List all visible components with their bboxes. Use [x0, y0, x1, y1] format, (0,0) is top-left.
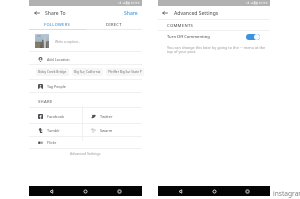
button[interactable]: Back [178, 189, 183, 194]
button[interactable]: Facebook [29, 110, 81, 122]
staticText: You can change this later by going to th… [167, 45, 266, 54]
button[interactable]: Tumblr [29, 124, 81, 136]
staticText: Tumblr [47, 128, 60, 133]
button[interactable]: Pfeiffer Big Sur State P [106, 68, 144, 76]
staticText: Turn Off Commenting [167, 34, 210, 40]
button[interactable]: Recents [245, 189, 250, 194]
button[interactable]: Add Location [29, 53, 142, 65]
staticText: Swarm [100, 128, 113, 133]
staticText: Share To [45, 10, 66, 17]
staticText: Add Location [47, 57, 70, 62]
button[interactable]: Tag People [29, 80, 142, 92]
button[interactable]: Advanced Settings [29, 150, 142, 157]
button[interactable]: Share [123, 8, 139, 19]
staticText: Big Sur, California [74, 70, 101, 74]
staticText: Flickr [47, 140, 57, 145]
button[interactable]: Bixby Creek Bridge [36, 68, 69, 76]
button[interactable]: Turn Off Commenting [158, 31, 270, 43]
button[interactable]: FOLLOWERS [29, 20, 85, 29]
staticText: Pfeiffer Big Sur State P [108, 70, 142, 74]
staticText: Write a caption... [55, 40, 81, 44]
button[interactable]: Big Sur, California [72, 68, 103, 76]
staticText: Facebook [47, 114, 65, 119]
staticText: Bixby Creek Bridge [38, 70, 67, 74]
button[interactable]: Home [212, 189, 217, 194]
staticText: Share [124, 10, 138, 17]
staticText: SHARE [38, 99, 53, 105]
button[interactable]: Back [162, 10, 168, 16]
staticText: Twitter [100, 114, 113, 119]
button[interactable] [246, 34, 260, 40]
staticText: COMMENTS [167, 23, 194, 29]
staticText: FOLLOWERS [44, 22, 70, 27]
button[interactable]: DIRECT [85, 20, 142, 29]
button[interactable]: Swarm [82, 124, 134, 136]
button[interactable]: Twitter [82, 110, 134, 122]
button[interactable]: Home [83, 189, 88, 194]
staticText: Tag People [47, 84, 66, 89]
staticText: Advanced Settings [174, 10, 219, 17]
staticText: DIRECT [106, 22, 122, 27]
button[interactable]: Back [34, 10, 40, 16]
button[interactable]: Flickr [29, 136, 81, 148]
staticText: Advanced Settings [70, 151, 101, 156]
staticText: instagram [273, 189, 300, 198]
button[interactable]: Back [49, 189, 54, 194]
button[interactable]: Recents [117, 189, 122, 194]
